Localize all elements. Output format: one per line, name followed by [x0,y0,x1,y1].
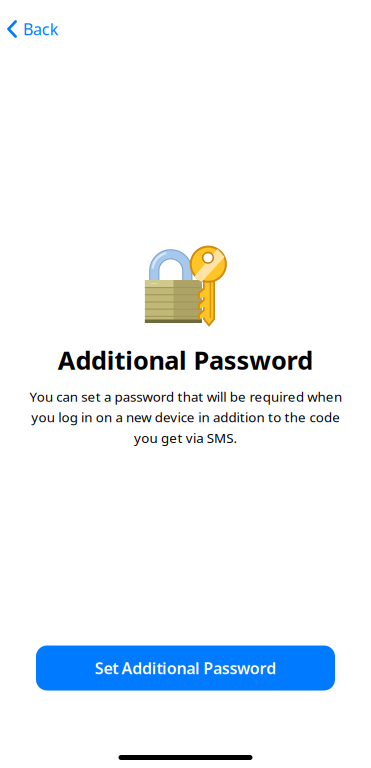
staticText: Set Additional Password [95,657,276,679]
button[interactable]: Back [0,8,71,50]
staticText: Additional Password [58,343,313,377]
staticText: Back [23,18,59,40]
button[interactable]: Set Additional Password [18,637,352,699]
staticText: You can set a password that will be requ… [29,388,342,447]
